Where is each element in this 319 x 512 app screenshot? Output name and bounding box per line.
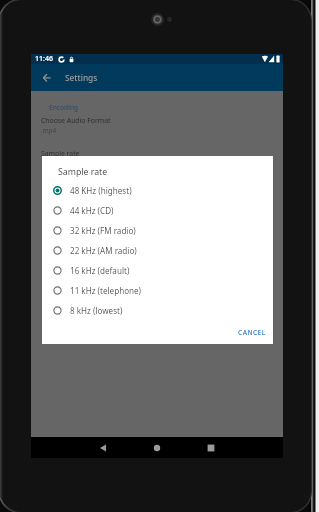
staticText: 44 kHz (CD) xyxy=(70,205,114,216)
staticText: 32 kHz (FM radio) xyxy=(70,225,136,236)
staticText: Settings xyxy=(65,72,98,83)
button[interactable]: 16 kHz (default) xyxy=(42,260,273,280)
staticText: 48 KHz (highest) xyxy=(70,185,132,196)
staticText: 11 kHz (telephone) xyxy=(70,285,142,296)
button[interactable]: CANCEL xyxy=(233,324,271,341)
button[interactable]: 11 kHz (telephone) xyxy=(42,280,273,300)
staticText: Sample rate xyxy=(58,166,108,178)
staticText: Encoding xyxy=(49,103,79,112)
staticText: .mp4 xyxy=(41,126,57,135)
staticText: 11:46 xyxy=(35,54,53,64)
button[interactable]: 48 KHz (highest) xyxy=(42,180,273,200)
button[interactable]: Back xyxy=(93,438,113,458)
staticText: Choose Audio Format xyxy=(41,116,111,125)
button[interactable]: 44 kHz (CD) xyxy=(42,200,273,220)
button[interactable]: Navigate up xyxy=(38,69,56,87)
staticText: CANCEL xyxy=(238,328,266,337)
staticText: 22 kHz (AM radio) xyxy=(70,245,137,256)
staticText: 16 kHz (default) xyxy=(70,265,130,276)
button[interactable]: Home xyxy=(147,438,167,458)
button[interactable]: 22 kHz (AM radio) xyxy=(42,240,273,260)
staticText: 8 kHz (lowest) xyxy=(70,305,123,316)
button[interactable]: 32 kHz (FM radio) xyxy=(42,220,273,240)
button[interactable]: 8 kHz (lowest) xyxy=(42,300,273,320)
staticText: Sample rate xyxy=(41,149,80,158)
button[interactable]: Recent apps xyxy=(201,438,221,458)
